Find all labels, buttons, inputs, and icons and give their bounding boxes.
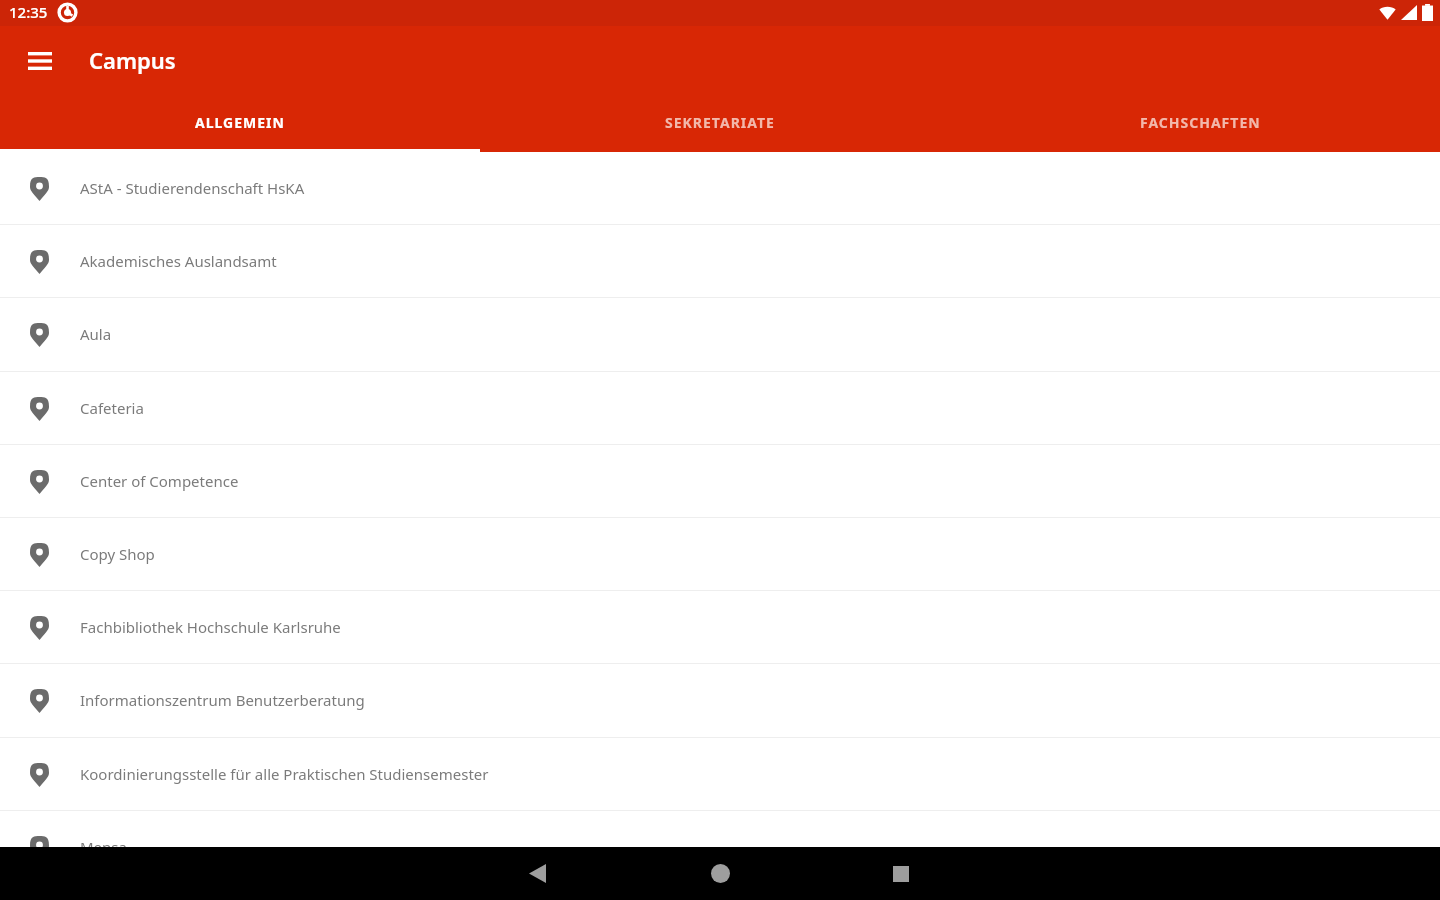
button[interactable]: Open navigation drawer	[16, 37, 64, 85]
staticText: Center of Competence	[80, 471, 239, 491]
staticText: Aula	[80, 324, 112, 344]
staticText: AStA - Studierendenschaft HsKA	[80, 178, 305, 198]
button[interactable]: Copy Shop	[0, 518, 1440, 591]
staticText: Mensa	[80, 837, 127, 857]
button[interactable]: Informationszentrum Benutzerberatung	[0, 664, 1440, 738]
button[interactable]: Cafeteria	[0, 372, 1440, 445]
button[interactable]: Recent apps	[856, 847, 946, 900]
staticText: Cafeteria	[80, 398, 144, 418]
staticText: Koordinierungsstelle für alle Praktische…	[80, 764, 489, 784]
button[interactable]: AStA - Studierendenschaft HsKA	[0, 152, 1440, 225]
staticText: Akademisches Auslandsamt	[80, 251, 277, 271]
staticText: ALLGEMEIN	[195, 113, 285, 132]
staticText: Copy Shop	[80, 544, 155, 564]
staticText: Campus	[89, 45, 176, 75]
button[interactable]: Koordinierungsstelle für alle Praktische…	[0, 738, 1440, 811]
staticText: FACHSCHAFTEN	[1140, 113, 1261, 132]
button[interactable]: FACHSCHAFTEN	[960, 96, 1440, 152]
button[interactable]: Back	[492, 847, 582, 900]
button[interactable]: Home	[675, 847, 765, 900]
staticText: SEKRETARIATE	[665, 113, 775, 132]
button[interactable]: SEKRETARIATE	[480, 96, 960, 152]
button[interactable]: ALLGEMEIN	[0, 96, 480, 152]
staticText: Fachbibliothek Hochschule Karlsruhe	[80, 617, 341, 637]
staticText: 12:35	[9, 2, 48, 22]
button[interactable]: Aula	[0, 298, 1440, 372]
staticText: Informationszentrum Benutzerberatung	[80, 690, 365, 710]
button[interactable]: Fachbibliothek Hochschule Karlsruhe	[0, 591, 1440, 664]
button[interactable]: Center of Competence	[0, 445, 1440, 518]
button[interactable]: Akademisches Auslandsamt	[0, 225, 1440, 298]
button[interactable]: Mensa	[0, 811, 1440, 884]
